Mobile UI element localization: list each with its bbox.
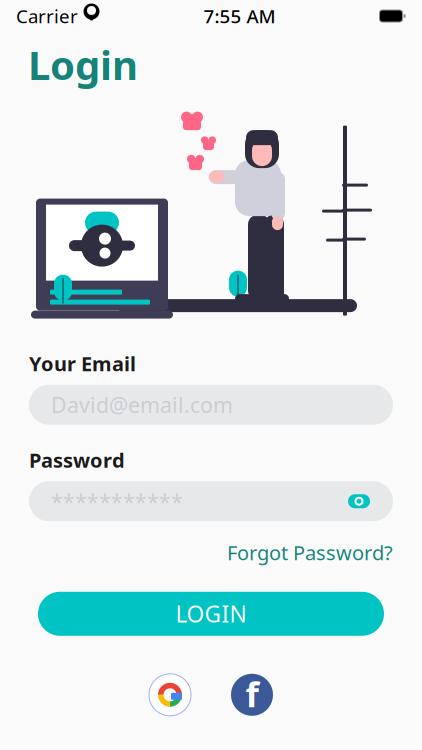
staticText: Carrier xyxy=(16,4,78,28)
button[interactable]: Sign in with Google xyxy=(149,674,191,716)
staticText: f xyxy=(245,671,258,717)
button[interactable]: Forgot Password? xyxy=(227,539,393,566)
staticText: Password xyxy=(29,447,125,473)
staticText: Login xyxy=(28,38,138,91)
button[interactable]: Sign in with Facebook xyxy=(231,674,273,716)
staticText: Forgot Password? xyxy=(227,539,393,566)
button[interactable]: LOGIN xyxy=(38,592,384,636)
staticText: 7:55 AM xyxy=(203,4,275,28)
staticText: LOGIN xyxy=(175,599,246,629)
button[interactable]: Show password xyxy=(347,489,371,513)
staticText: Your Email xyxy=(29,350,136,377)
staticText: *********** xyxy=(51,487,183,515)
staticText: David@email.com xyxy=(51,390,233,419)
